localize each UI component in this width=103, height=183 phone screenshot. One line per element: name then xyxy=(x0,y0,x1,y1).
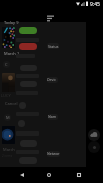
staticText: M xyxy=(6,115,10,120)
button[interactable] xyxy=(18,120,25,127)
button[interactable]: Recents xyxy=(70,167,88,183)
button[interactable] xyxy=(19,157,37,164)
button[interactable]: Photo xyxy=(2,27,15,48)
button[interactable] xyxy=(20,81,37,87)
staticText: C xyxy=(5,62,8,67)
button[interactable] xyxy=(20,65,37,71)
button[interactable]: Sort xyxy=(46,13,56,23)
button[interactable] xyxy=(20,140,37,147)
staticText: March 1 xyxy=(4,51,20,56)
button[interactable]: Back xyxy=(13,167,31,183)
button[interactable]: Cloud backup xyxy=(88,129,100,141)
button[interactable]: Status xyxy=(47,43,59,49)
staticText: March xyxy=(3,147,15,152)
staticText: 9:45 xyxy=(90,1,100,8)
button[interactable]: M xyxy=(4,114,11,121)
button[interactable]: Device xyxy=(47,77,58,83)
staticText: Status xyxy=(48,44,59,49)
staticText: Device xyxy=(47,77,58,83)
button[interactable]: C xyxy=(3,61,10,68)
button[interactable]: Home xyxy=(40,167,58,183)
button[interactable] xyxy=(19,43,37,50)
staticText: Cancel xyxy=(5,101,18,106)
button[interactable]: Photo xyxy=(2,73,15,92)
button[interactable]: Network xyxy=(47,151,60,157)
staticText: Network xyxy=(47,151,60,157)
button[interactable] xyxy=(19,102,26,109)
button[interactable] xyxy=(19,27,37,34)
staticText: 2 items xyxy=(2,154,13,158)
button[interactable]: Photo xyxy=(2,126,15,144)
button[interactable]: Name xyxy=(48,114,58,120)
staticText: Today 9 xyxy=(4,20,19,25)
staticText: Name xyxy=(48,114,58,120)
staticText: LUCY xyxy=(1,93,11,98)
button[interactable]: Profile xyxy=(88,141,100,153)
